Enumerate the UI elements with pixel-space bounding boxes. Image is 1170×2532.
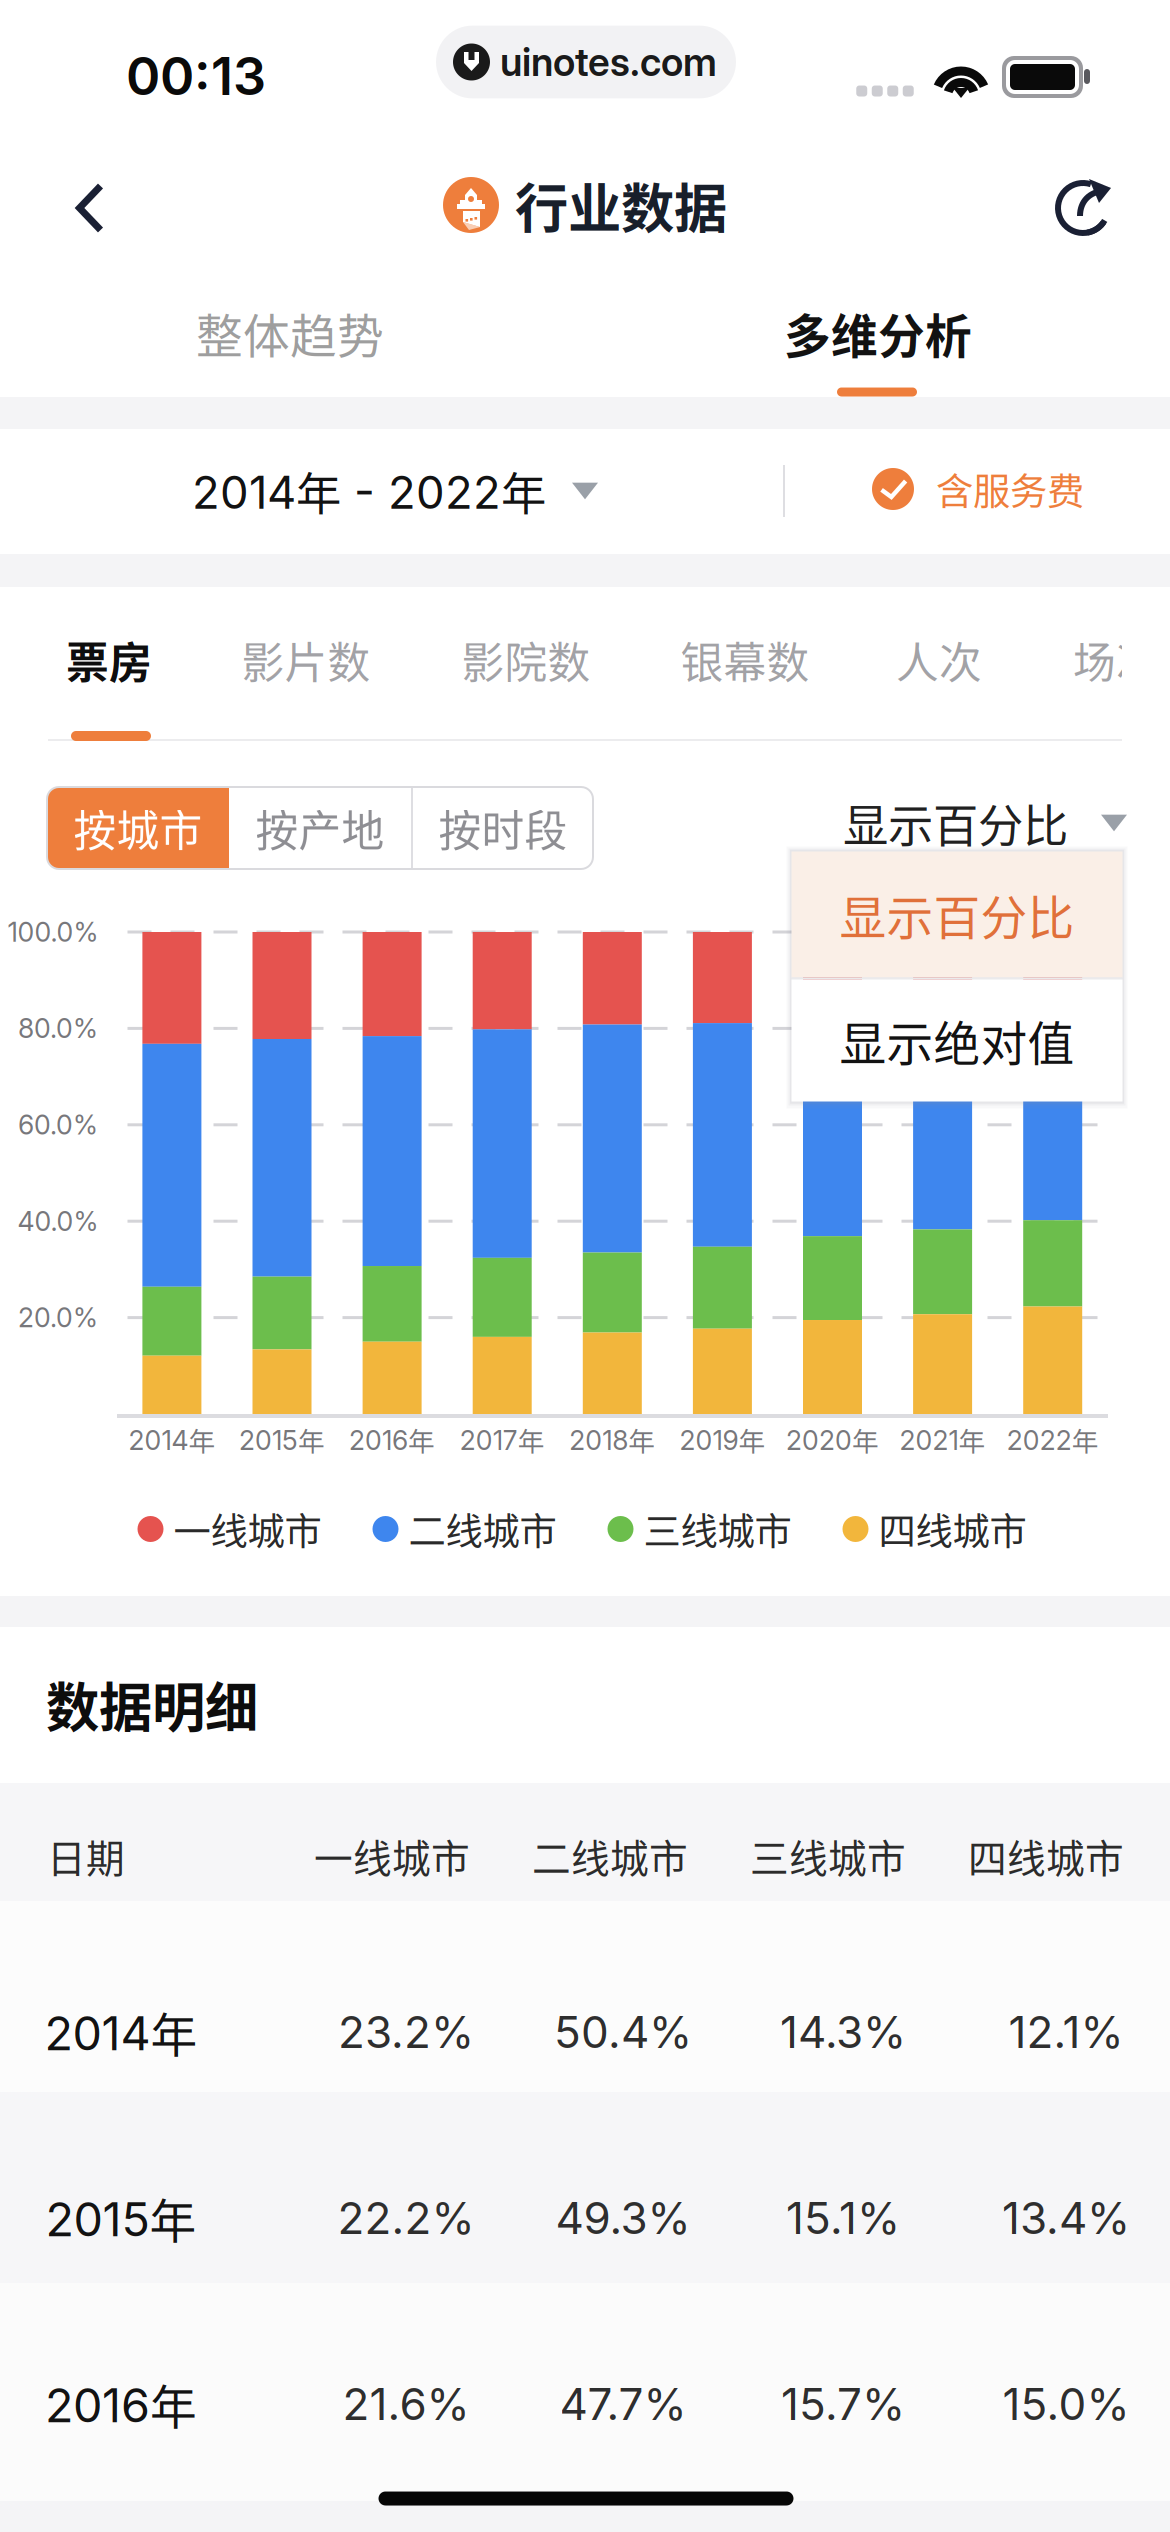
staticText: 二线城市 — [532, 1828, 688, 1884]
staticText: 一线城市 — [314, 1828, 470, 1884]
staticText: 一线城市 — [173, 1502, 321, 1556]
staticText: 数据明细 — [46, 1665, 258, 1743]
staticText: 人次 — [896, 629, 982, 691]
button[interactable]: 返回 — [26, 146, 154, 270]
staticText: 60.0% — [18, 1109, 98, 1141]
button[interactable]: 多维分析 — [585, 269, 1170, 396]
staticText: 影片数 — [241, 629, 370, 691]
staticText: 三线城市 — [643, 1502, 791, 1556]
staticText: 2021年 — [900, 1420, 986, 1459]
staticText: 四线城市 — [878, 1502, 1026, 1556]
staticText: 显示绝对值 — [839, 1007, 1074, 1074]
staticText: 2018年 — [569, 1420, 655, 1459]
staticText: 四线城市 — [968, 1828, 1124, 1884]
staticText: 显示百分比 — [839, 881, 1074, 948]
button[interactable]: 含服务费 — [848, 432, 1108, 546]
staticText: 22.2% — [337, 2191, 474, 2245]
staticText: 按时段 — [438, 797, 567, 859]
staticText: 49.3% — [555, 2191, 690, 2245]
staticText: uinotes.com — [500, 39, 717, 85]
button[interactable]: 按城市 — [47, 787, 229, 869]
staticText: 2016年 — [45, 2370, 197, 2438]
staticText: 14.3% — [780, 2005, 906, 2059]
button[interactable]: 显示百分比 — [819, 764, 1151, 882]
staticText: 2015年 — [239, 1420, 325, 1459]
staticText: 银幕数 — [680, 629, 809, 691]
staticText: 23.2% — [338, 2005, 474, 2059]
staticText: 场次 — [1073, 629, 1159, 691]
button[interactable]: 显示百分比 — [791, 851, 1122, 977]
button[interactable]: 显示绝对值 — [791, 979, 1122, 1101]
staticText: 2014年 - 2022年 — [192, 458, 546, 524]
staticText: 日期 — [47, 1828, 125, 1884]
button[interactable]: 整体趋势 — [0, 269, 582, 396]
staticText: 按城市 — [73, 797, 202, 859]
staticText: 13.4% — [1002, 2191, 1130, 2245]
staticText: 47.7% — [559, 2377, 686, 2431]
staticText: 行业数据 — [515, 166, 727, 244]
staticText: 2022年 — [1007, 1420, 1099, 1459]
staticText: 12.1% — [1008, 2005, 1123, 2059]
staticText: 三线城市 — [750, 1828, 906, 1884]
staticText: 20.0% — [18, 1301, 98, 1334]
staticText: 按产地 — [255, 797, 384, 859]
button[interactable]: 影片数 — [208, 585, 404, 735]
staticText: 80.0% — [18, 1012, 98, 1045]
button[interactable]: 分享 — [1021, 145, 1149, 269]
button[interactable]: 银幕数 — [647, 585, 843, 735]
staticText: 二线城市 — [408, 1502, 556, 1556]
staticText: 15.7% — [781, 2377, 905, 2431]
staticText: 显示百分比 — [843, 790, 1068, 856]
staticText: 21.6% — [342, 2377, 469, 2431]
staticText: 50.4% — [554, 2005, 692, 2059]
staticText: 40.0% — [17, 1205, 98, 1237]
staticText: 2020年 — [786, 1420, 879, 1459]
staticText: 多维分析 — [784, 299, 972, 367]
button[interactable]: 票房 — [11, 585, 207, 735]
staticText: 2016年 — [349, 1420, 435, 1459]
staticText: 含服务费 — [936, 462, 1084, 516]
staticText: 2014年 — [44, 1998, 197, 2066]
staticText: 2019年 — [679, 1420, 765, 1459]
button[interactable]: 场次 — [1018, 585, 1170, 735]
button[interactable]: 人次 — [841, 585, 1037, 735]
staticText: 2015年 — [45, 2184, 196, 2252]
button[interactable]: 影院数 — [428, 585, 624, 735]
staticText: 15.1% — [786, 2191, 900, 2245]
staticText: 影院数 — [461, 629, 590, 691]
staticText: 2017年 — [460, 1420, 545, 1459]
staticText: 15.0% — [1002, 2377, 1129, 2431]
staticText: 整体趋势 — [196, 299, 384, 367]
button[interactable]: 2014年 - 2022年 — [156, 426, 634, 556]
staticText: 票房 — [66, 629, 152, 691]
staticText: 100.0% — [7, 916, 98, 948]
button[interactable]: 按时段 — [413, 787, 593, 869]
staticText: 2014年 — [128, 1420, 215, 1459]
button[interactable]: 按产地 — [229, 787, 411, 869]
staticText: 00:13 — [126, 44, 266, 107]
